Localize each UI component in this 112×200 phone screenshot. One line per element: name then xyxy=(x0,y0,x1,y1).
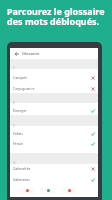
staticText: Parcourez le glossaire des mots débloqué… xyxy=(7,5,105,27)
staticText: F xyxy=(13,123,15,127)
staticText: Canopée xyxy=(13,75,28,80)
staticText: Glossaire xyxy=(22,51,40,56)
staticText: Conjuguant·e xyxy=(13,86,35,91)
button[interactable]: Back xyxy=(13,50,20,57)
staticText: G xyxy=(13,160,16,164)
staticText: Émerger xyxy=(13,108,27,113)
staticText: Fallais xyxy=(13,131,23,136)
staticText: E xyxy=(13,100,15,104)
button[interactable]: Canopée xyxy=(10,72,98,83)
button[interactable]: Action xyxy=(19,187,35,194)
staticText: Férule xyxy=(13,141,23,146)
button[interactable]: Action xyxy=(61,187,77,194)
staticText: Galimatias xyxy=(13,177,30,182)
button[interactable]: Émerger xyxy=(10,105,98,116)
button[interactable]: Back xyxy=(10,48,98,59)
button[interactable]: Férule xyxy=(10,138,98,149)
button[interactable]: Conjuguant·e xyxy=(10,83,98,94)
button[interactable]: Action xyxy=(40,187,56,194)
staticText: Galimafrée xyxy=(13,166,31,171)
staticText: C xyxy=(13,65,16,69)
button[interactable]: Fallais xyxy=(10,128,98,139)
button[interactable]: Galimatias xyxy=(10,174,98,185)
button[interactable]: Galimafrée xyxy=(10,163,98,174)
